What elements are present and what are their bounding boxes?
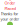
staticText: Order Placed bbox=[4, 0, 15, 11]
staticText: Thanks for your order bbox=[0, 11, 19, 22]
